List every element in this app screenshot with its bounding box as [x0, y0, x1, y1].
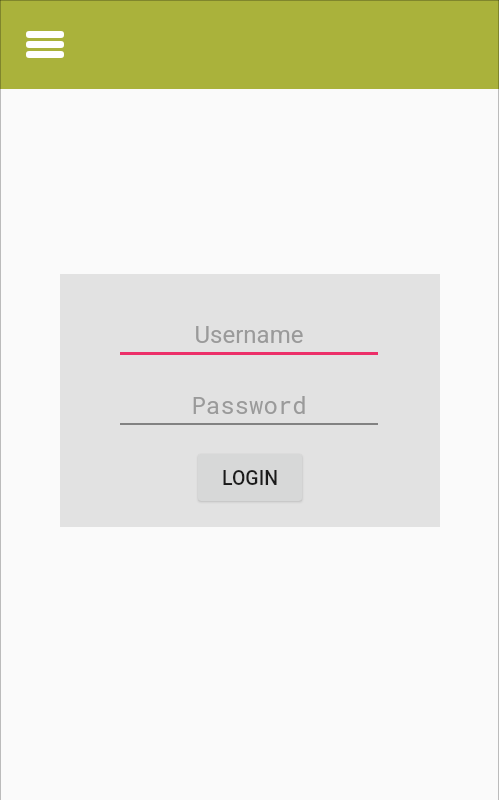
button[interactable]: Username [120, 308, 378, 355]
button[interactable]: LOGIN [198, 454, 302, 501]
staticText: Password [120, 389, 378, 421]
button[interactable]: Open navigation menu [14, 19, 76, 69]
staticText: Username [120, 321, 378, 349]
staticText: LOGIN [222, 467, 278, 490]
button[interactable]: Password [120, 380, 378, 425]
